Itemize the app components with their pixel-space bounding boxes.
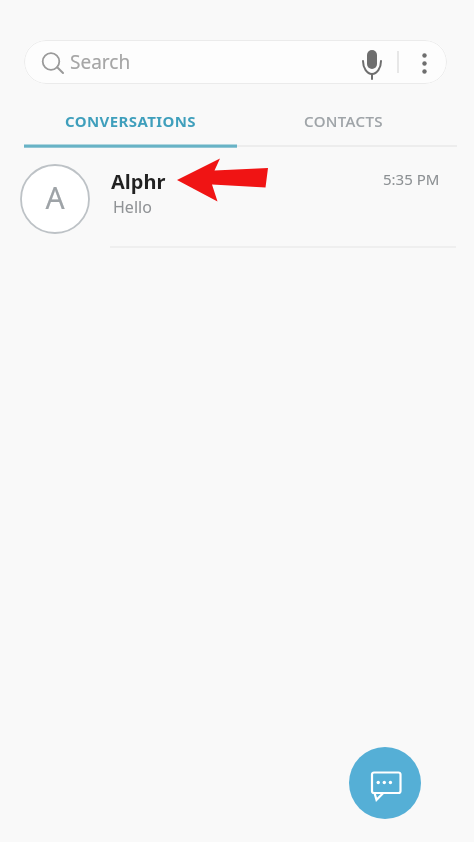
button[interactable]: A <box>0 152 474 247</box>
button[interactable]: Search <box>24 40 447 84</box>
staticText: 5:35 PM <box>383 169 440 189</box>
button[interactable]: CONTACTS <box>237 98 450 144</box>
button[interactable] <box>349 747 421 819</box>
staticText: Alphr <box>111 168 166 195</box>
staticText: CONTACTS <box>304 111 383 131</box>
button[interactable]: CONVERSATIONS <box>24 98 237 144</box>
staticText: CONVERSATIONS <box>65 111 196 131</box>
staticText: Search <box>70 49 131 75</box>
staticText: A <box>40 177 70 221</box>
staticText: Hello <box>113 196 152 218</box>
